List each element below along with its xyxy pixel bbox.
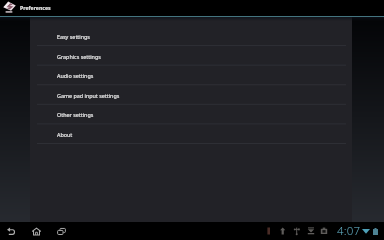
- button[interactable]: Game pad input settings: [30, 85, 352, 105]
- staticText: Audio settings: [57, 72, 94, 79]
- staticText: About: [57, 131, 73, 138]
- button[interactable]: Easy settings: [30, 26, 352, 46]
- staticText: Other settings: [57, 111, 94, 118]
- button[interactable]: Recent apps: [54, 224, 68, 238]
- staticText: Preferences: [20, 4, 51, 11]
- button[interactable]: Graphics settings: [30, 46, 352, 66]
- staticText: Game pad input settings: [57, 92, 120, 99]
- staticText: Easy settings: [57, 33, 90, 40]
- staticText: 4:07: [337, 223, 361, 239]
- button[interactable]: About: [30, 124, 352, 144]
- staticText: Graphics settings: [57, 53, 101, 60]
- button[interactable]: Home: [29, 224, 43, 238]
- button[interactable]: Other settings: [30, 104, 352, 124]
- button[interactable]: Audio settings: [30, 65, 352, 85]
- button[interactable]: Back: [4, 224, 18, 238]
